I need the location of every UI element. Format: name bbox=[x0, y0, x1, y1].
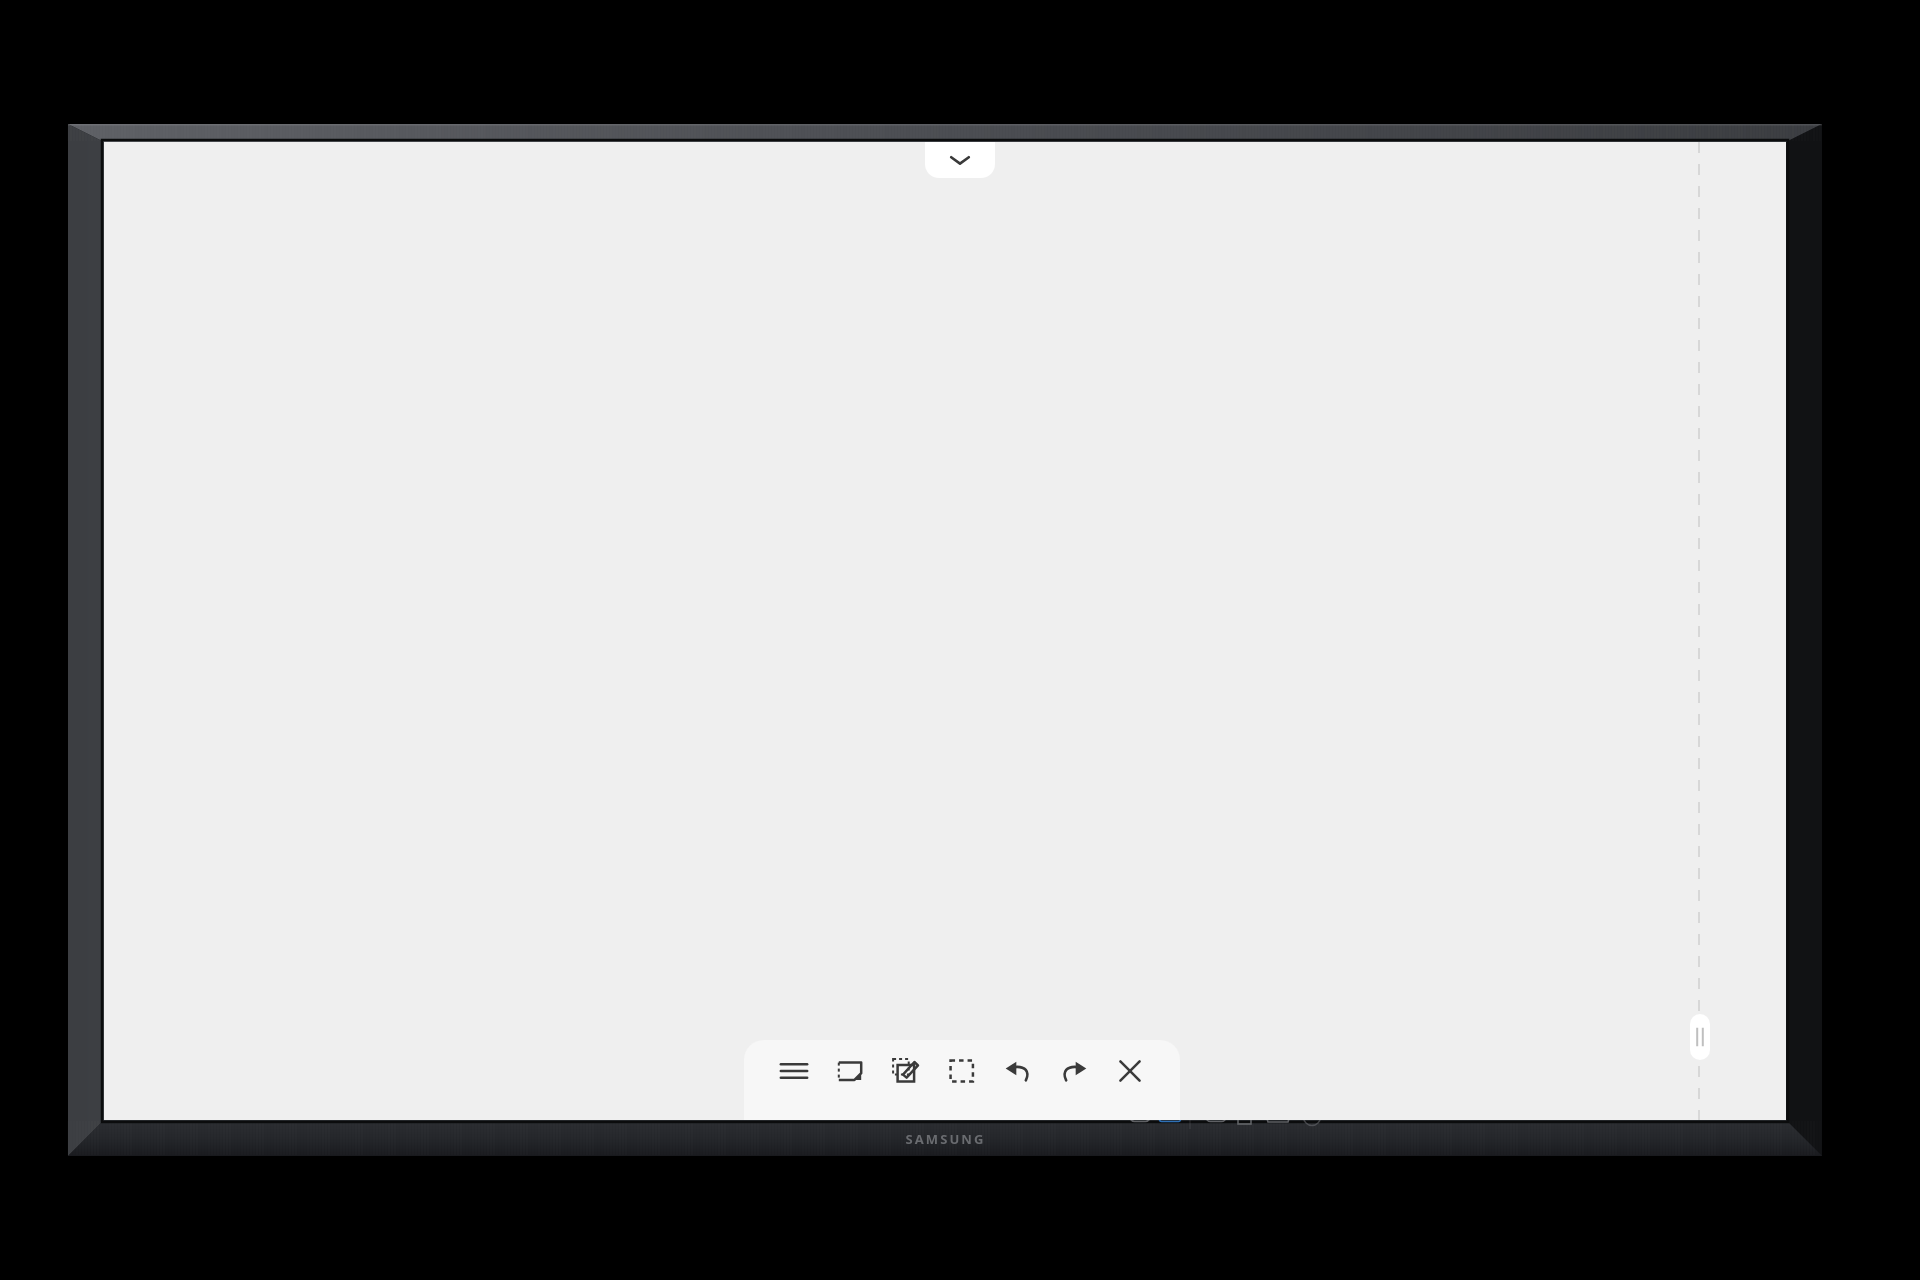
staticText: SAMSUNG bbox=[905, 1130, 986, 1148]
button[interactable]: Show menu bbox=[925, 142, 995, 178]
button[interactable]: Edit note bbox=[878, 1040, 934, 1102]
button[interactable]: Undo bbox=[990, 1040, 1046, 1102]
button[interactable]: Menu bbox=[766, 1040, 822, 1102]
button[interactable]: Notes bbox=[822, 1040, 878, 1102]
button[interactable]: Close bbox=[1102, 1040, 1158, 1102]
button[interactable]: Resize page bbox=[1690, 1014, 1710, 1060]
button[interactable]: Select area bbox=[934, 1040, 990, 1102]
button[interactable]: Redo bbox=[1046, 1040, 1102, 1102]
